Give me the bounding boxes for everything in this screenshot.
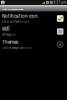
staticText: 4:27 pm <box>53 1 65 4</box>
staticText: Choose background color <box>2 46 32 49</box>
staticText: Notification icon <box>2 13 38 19</box>
button[interactable]: Wifi <box>0 25 67 38</box>
staticText: Wifi <box>2 26 10 32</box>
staticText: Show notification icon <box>2 20 29 23</box>
button[interactable]: Notification icon <box>0 12 67 25</box>
staticText: Themes <box>2 39 18 45</box>
staticText: Wifi keep on <box>2 33 15 36</box>
staticText: Auto Airplane mode <box>2 8 23 11</box>
button[interactable]: Themes <box>0 38 67 51</box>
